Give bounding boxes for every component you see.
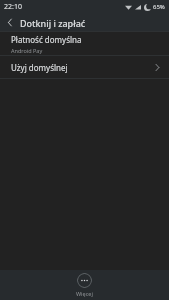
button[interactable]: Back	[0, 14, 20, 31]
staticText: 65%	[153, 3, 165, 11]
button[interactable]: Płatność domyślna	[0, 32, 169, 55]
staticText: 22:10	[4, 2, 22, 12]
staticText: Dotknij i zapłać	[20, 17, 86, 29]
staticText: Więcej	[76, 290, 93, 297]
button[interactable]: Więcej	[70, 271, 99, 299]
button[interactable]: Użyj domyślnej	[0, 56, 169, 78]
staticText: Płatność domyślna	[11, 34, 82, 45]
staticText: Android Pay	[11, 47, 43, 54]
staticText: Użyj domyślnej	[11, 62, 155, 73]
